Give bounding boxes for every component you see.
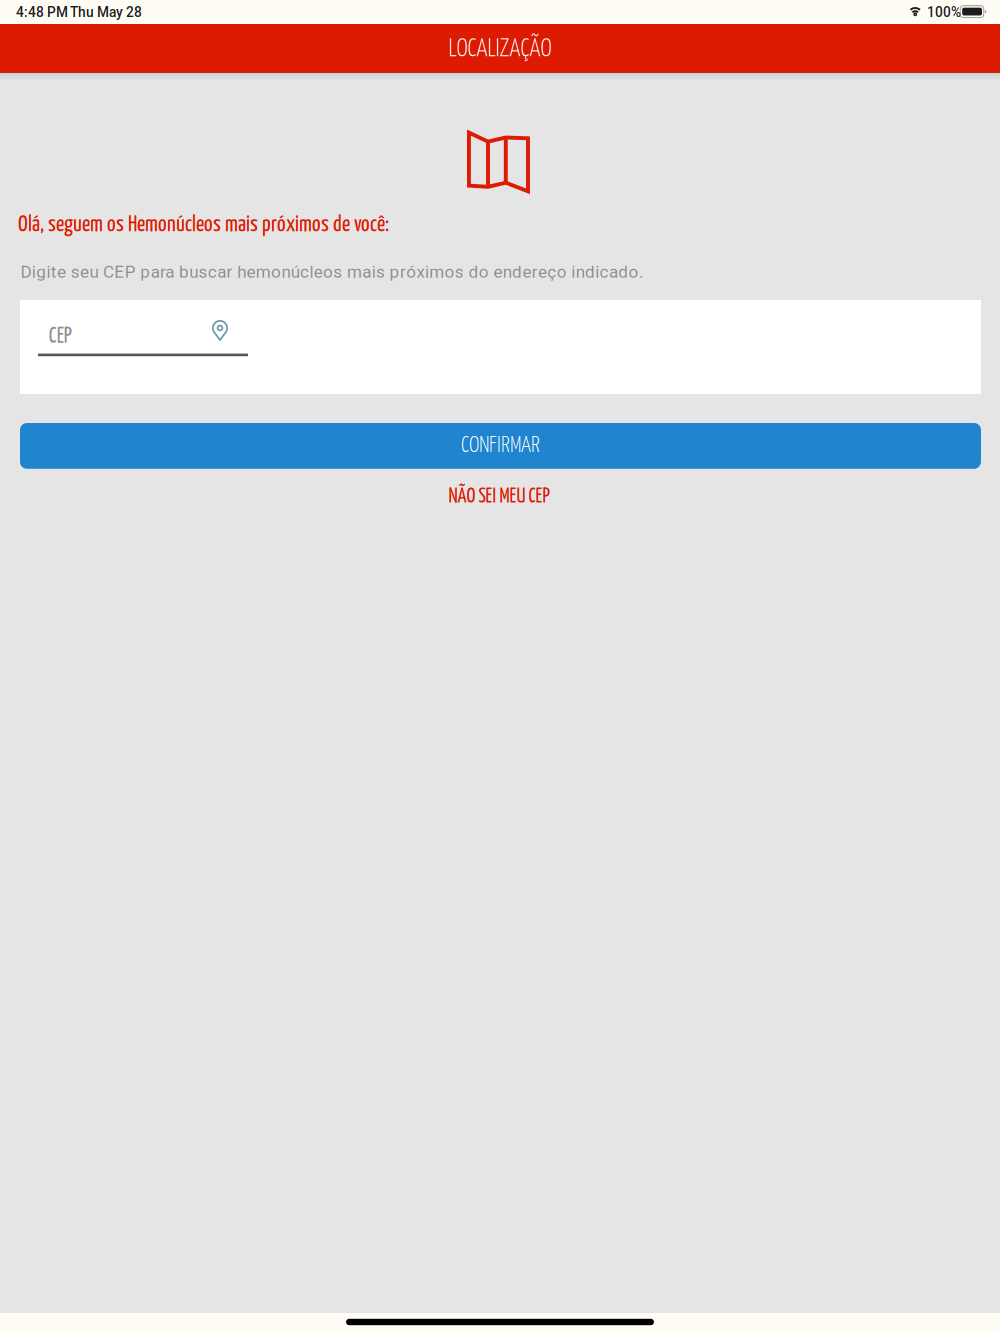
- staticText: Thu May 28: [70, 4, 142, 20]
- button[interactable]: CONFIRMAR: [20, 423, 981, 469]
- staticText: Olá, seguem os Hemonúcleos mais próximos…: [18, 214, 389, 236]
- button[interactable]: NÃO SEI MEU CEP: [369, 480, 629, 514]
- staticText: CEP: [49, 326, 72, 347]
- staticText: LOCALIZAÇÃO: [448, 38, 551, 61]
- staticText: NÃO SEI MEU CEP: [448, 487, 549, 507]
- staticText: 4:48 PM: [16, 4, 68, 20]
- staticText: CONFIRMAR: [461, 435, 540, 457]
- staticText: Digite seu CEP para buscar hemonúcleos m…: [20, 262, 644, 282]
- staticText: 100%: [927, 4, 961, 20]
